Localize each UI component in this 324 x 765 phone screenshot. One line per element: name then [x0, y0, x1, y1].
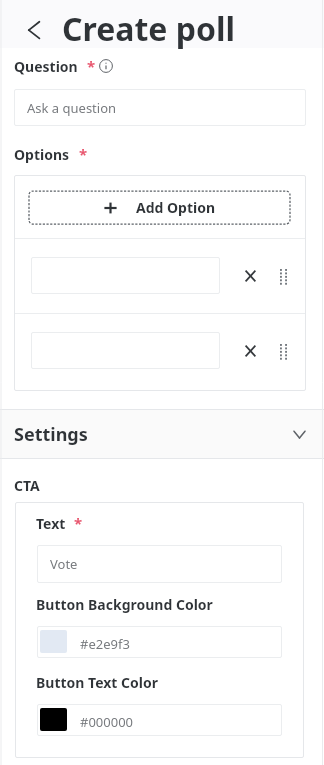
staticText: Button Text Color [36, 673, 158, 692]
staticText: CTA [14, 476, 40, 495]
staticText: * [79, 144, 88, 164]
button[interactable]: Ask a question [14, 89, 306, 126]
button[interactable] [31, 257, 220, 294]
staticText: Button Background Color [36, 595, 213, 614]
button[interactable]: More information [99, 59, 113, 73]
staticText: * [74, 513, 83, 533]
staticText: #000000 [80, 713, 134, 731]
staticText: Add Option [136, 198, 216, 217]
button[interactable]: Reorder option [270, 258, 300, 293]
button[interactable]: #e2e9f3 [37, 626, 282, 658]
staticText: #e2e9f3 [80, 635, 130, 653]
button[interactable]: Add Option [29, 191, 290, 224]
button[interactable]: Settings [0, 410, 324, 458]
button[interactable] [31, 332, 220, 369]
button[interactable]: #000000 [37, 704, 282, 736]
button[interactable]: Vote [37, 545, 282, 583]
button[interactable]: Remove option [235, 333, 265, 368]
button[interactable]: Back [21, 13, 47, 39]
staticText: Ask a question [27, 99, 117, 117]
staticText: Options [14, 145, 70, 164]
staticText: Vote [50, 555, 78, 573]
staticText: * [87, 56, 96, 76]
staticText: Settings [14, 422, 88, 447]
button[interactable]: Remove option [235, 258, 265, 293]
staticText: Question [14, 57, 78, 76]
button[interactable]: Reorder option [270, 333, 300, 368]
staticText: Text [36, 514, 66, 533]
staticText: Create poll [62, 7, 236, 51]
